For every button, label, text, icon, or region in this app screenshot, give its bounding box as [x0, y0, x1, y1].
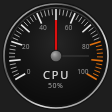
button[interactable]: CPU usage gauge, 50 percent	[0, 0, 112, 112]
